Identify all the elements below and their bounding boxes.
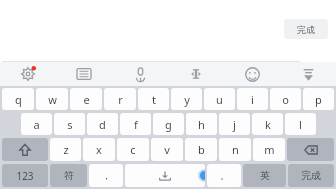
staticText: c — [130, 142, 136, 157]
button[interactable]: s — [54, 113, 85, 135]
button[interactable]: e — [70, 88, 102, 110]
button[interactable]: j — [219, 113, 250, 135]
staticText: 完成 — [297, 24, 315, 35]
button[interactable]: k — [252, 113, 283, 135]
staticText: z — [63, 142, 69, 157]
button[interactable]: Backspace — [287, 138, 334, 161]
button[interactable]: r — [104, 88, 136, 110]
staticText: ， — [102, 170, 111, 181]
staticText: g — [165, 117, 172, 132]
staticText: r — [118, 92, 123, 107]
button[interactable]: u — [204, 88, 235, 110]
button[interactable]: Emoji — [224, 62, 280, 86]
staticText: h — [198, 117, 205, 132]
staticText: 符 — [64, 169, 74, 182]
button[interactable]: ， — [89, 164, 123, 187]
button[interactable]: Candidates — [56, 62, 112, 86]
button[interactable]: 符 — [50, 164, 87, 187]
staticText: j — [233, 117, 236, 132]
button[interactable]: 。 — [207, 164, 241, 187]
button[interactable]: c — [117, 138, 149, 161]
button[interactable]: x — [83, 138, 115, 161]
button[interactable]: 完成 — [288, 164, 334, 187]
staticText: y — [184, 92, 190, 107]
staticText: p — [315, 92, 322, 107]
staticText: i — [251, 92, 254, 107]
button[interactable]: Space — [125, 164, 205, 187]
button[interactable]: g — [153, 113, 184, 135]
button[interactable]: Move cursor — [168, 62, 224, 86]
staticText: v — [164, 142, 170, 157]
button[interactable]: Settings — [0, 62, 56, 86]
button[interactable]: q — [2, 88, 34, 110]
button[interactable]: v — [151, 138, 183, 161]
button[interactable]: m — [253, 138, 285, 161]
button[interactable]: d — [87, 113, 118, 135]
button[interactable]: f — [120, 113, 151, 135]
button[interactable]: Shift — [2, 138, 48, 161]
button[interactable]: o — [270, 88, 301, 110]
button[interactable]: 完成 — [284, 19, 328, 39]
button[interactable]: h — [186, 113, 217, 135]
button[interactable]: y — [171, 88, 202, 110]
staticText: n — [232, 142, 239, 157]
button[interactable]: w — [36, 88, 68, 110]
button[interactable]: a — [21, 113, 52, 135]
staticText: m — [264, 142, 275, 157]
staticText: f — [134, 117, 138, 132]
staticText: 英 — [260, 169, 270, 182]
button[interactable]: 英 — [243, 164, 286, 187]
staticText: a — [33, 117, 40, 132]
button[interactable]: b — [185, 138, 217, 161]
button[interactable]: 123 — [2, 164, 48, 187]
staticText: u — [216, 92, 223, 107]
staticText: 完成 — [301, 169, 321, 182]
staticText: e — [83, 92, 90, 107]
button[interactable]: Voice input — [112, 62, 168, 86]
staticText: 123 — [16, 169, 34, 183]
staticText: s — [67, 117, 73, 132]
button[interactable]: t — [138, 88, 169, 110]
staticText: t — [152, 92, 156, 107]
staticText: b — [198, 142, 205, 157]
staticText: k — [265, 117, 271, 132]
button[interactable]: l — [285, 113, 316, 135]
button[interactable]: Hide keyboard — [280, 62, 336, 86]
staticText: x — [96, 142, 102, 157]
staticText: w — [48, 92, 57, 107]
staticText: 。 — [220, 170, 229, 181]
staticText: o — [282, 92, 289, 107]
button[interactable]: p — [303, 88, 334, 110]
button[interactable]: z — [50, 138, 81, 161]
staticText: l — [299, 117, 302, 132]
staticText: d — [99, 117, 106, 132]
button[interactable]: n — [219, 138, 251, 161]
button[interactable]: i — [237, 88, 268, 110]
staticText: q — [15, 92, 22, 107]
